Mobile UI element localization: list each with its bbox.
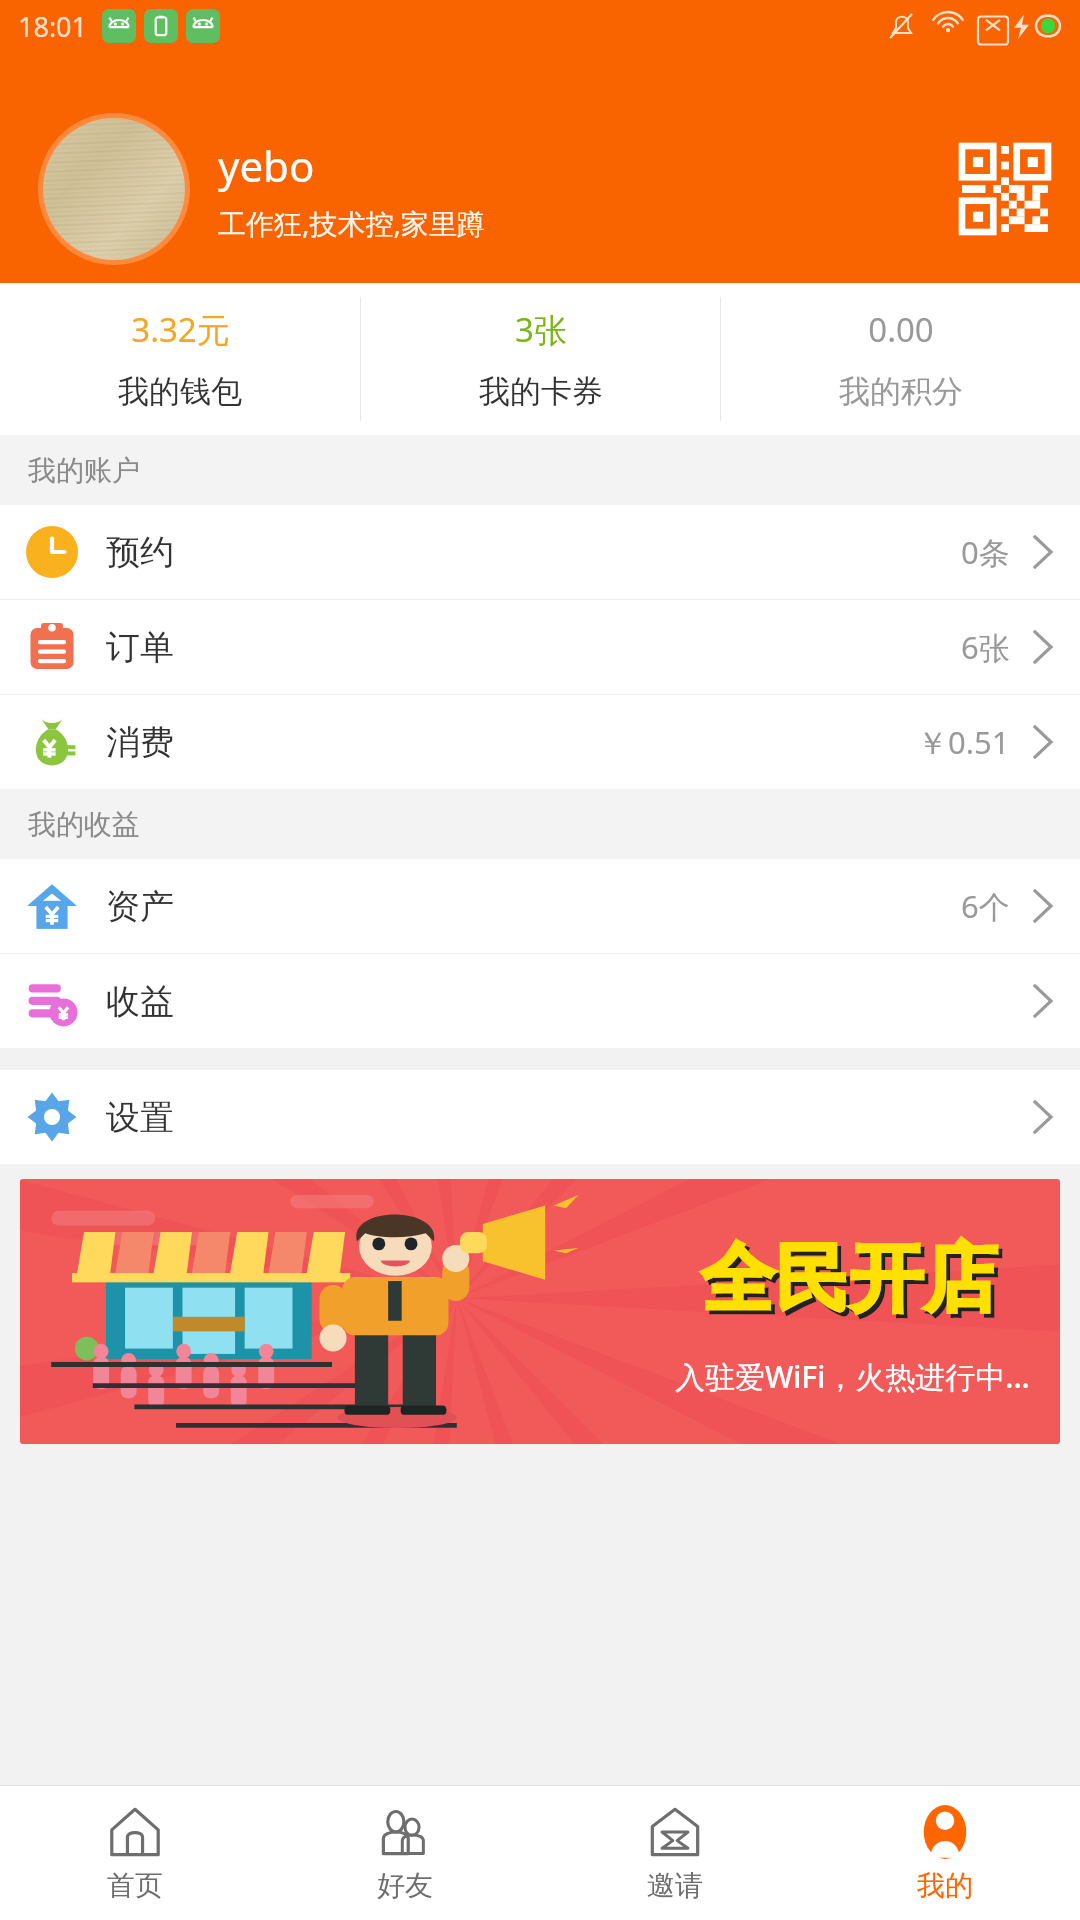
button[interactable]: QR code xyxy=(955,139,1055,239)
staticText: 首页 xyxy=(107,1868,163,1903)
staticText: 6个 xyxy=(961,885,1010,927)
staticText: 全民开店 xyxy=(701,1233,997,1326)
staticText: 18:01 xyxy=(18,8,88,45)
button[interactable]: Avatar xyxy=(43,118,185,260)
staticText: 我的收益 xyxy=(28,807,140,842)
staticText: 我的账户 xyxy=(28,453,140,488)
button[interactable]: 好友 xyxy=(270,1786,540,1920)
staticText: 我的积分 xyxy=(839,372,963,411)
staticText: 3张 xyxy=(515,307,567,352)
button[interactable]: 首页 xyxy=(0,1786,270,1920)
staticText: 0.00 xyxy=(868,307,934,352)
staticText: 订单 xyxy=(106,626,174,669)
button[interactable]: 资产 xyxy=(0,859,1080,953)
staticText: 全民开店 xyxy=(705,1237,1001,1330)
staticText: 资产 xyxy=(106,885,174,928)
staticText: 3.32元 xyxy=(131,307,230,352)
staticText: 入驻爱WiFi，火热进行中... xyxy=(675,1356,1030,1397)
button[interactable]: 预约 xyxy=(0,505,1080,599)
staticText: ￥0.51 xyxy=(917,721,1010,763)
button[interactable]: 3张 xyxy=(361,283,720,435)
button[interactable]: 全民开店 banner xyxy=(20,1179,1060,1444)
button[interactable]: 设置 xyxy=(0,1070,1080,1164)
staticText: 好友 xyxy=(377,1868,433,1903)
staticText: 消费 xyxy=(106,721,174,764)
button[interactable]: 我的 xyxy=(810,1786,1080,1920)
staticText: 预约 xyxy=(106,531,174,574)
button[interactable]: 3.32元 xyxy=(0,283,360,435)
button[interactable]: 订单 xyxy=(0,600,1080,694)
staticText: 我的钱包 xyxy=(118,372,242,411)
staticText: 设置 xyxy=(106,1096,174,1139)
staticText: 邀请 xyxy=(647,1868,703,1903)
staticText: yebo xyxy=(218,137,315,194)
staticText: 我的卡券 xyxy=(479,372,603,411)
button[interactable]: 消费 xyxy=(0,695,1080,789)
staticText: 我的 xyxy=(917,1868,973,1903)
staticText: 工作狂,技术控,家里蹲 xyxy=(218,204,486,242)
button[interactable]: 邀请 xyxy=(540,1786,810,1920)
staticText: 收益 xyxy=(106,980,174,1023)
staticText: 0条 xyxy=(961,531,1010,573)
button[interactable]: 0.00 xyxy=(721,283,1080,435)
button[interactable]: 收益 xyxy=(0,954,1080,1048)
staticText: 6张 xyxy=(961,626,1010,668)
